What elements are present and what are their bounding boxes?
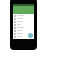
button[interactable]: [13, 14, 34, 17]
button[interactable]: [13, 23, 34, 26]
button[interactable]: [13, 17, 34, 20]
button[interactable]: [13, 35, 34, 38]
button[interactable]: [13, 29, 34, 32]
button[interactable]: Compose: [28, 33, 33, 38]
button[interactable]: [13, 26, 34, 29]
button[interactable]: [13, 20, 34, 23]
button[interactable]: [13, 32, 34, 35]
